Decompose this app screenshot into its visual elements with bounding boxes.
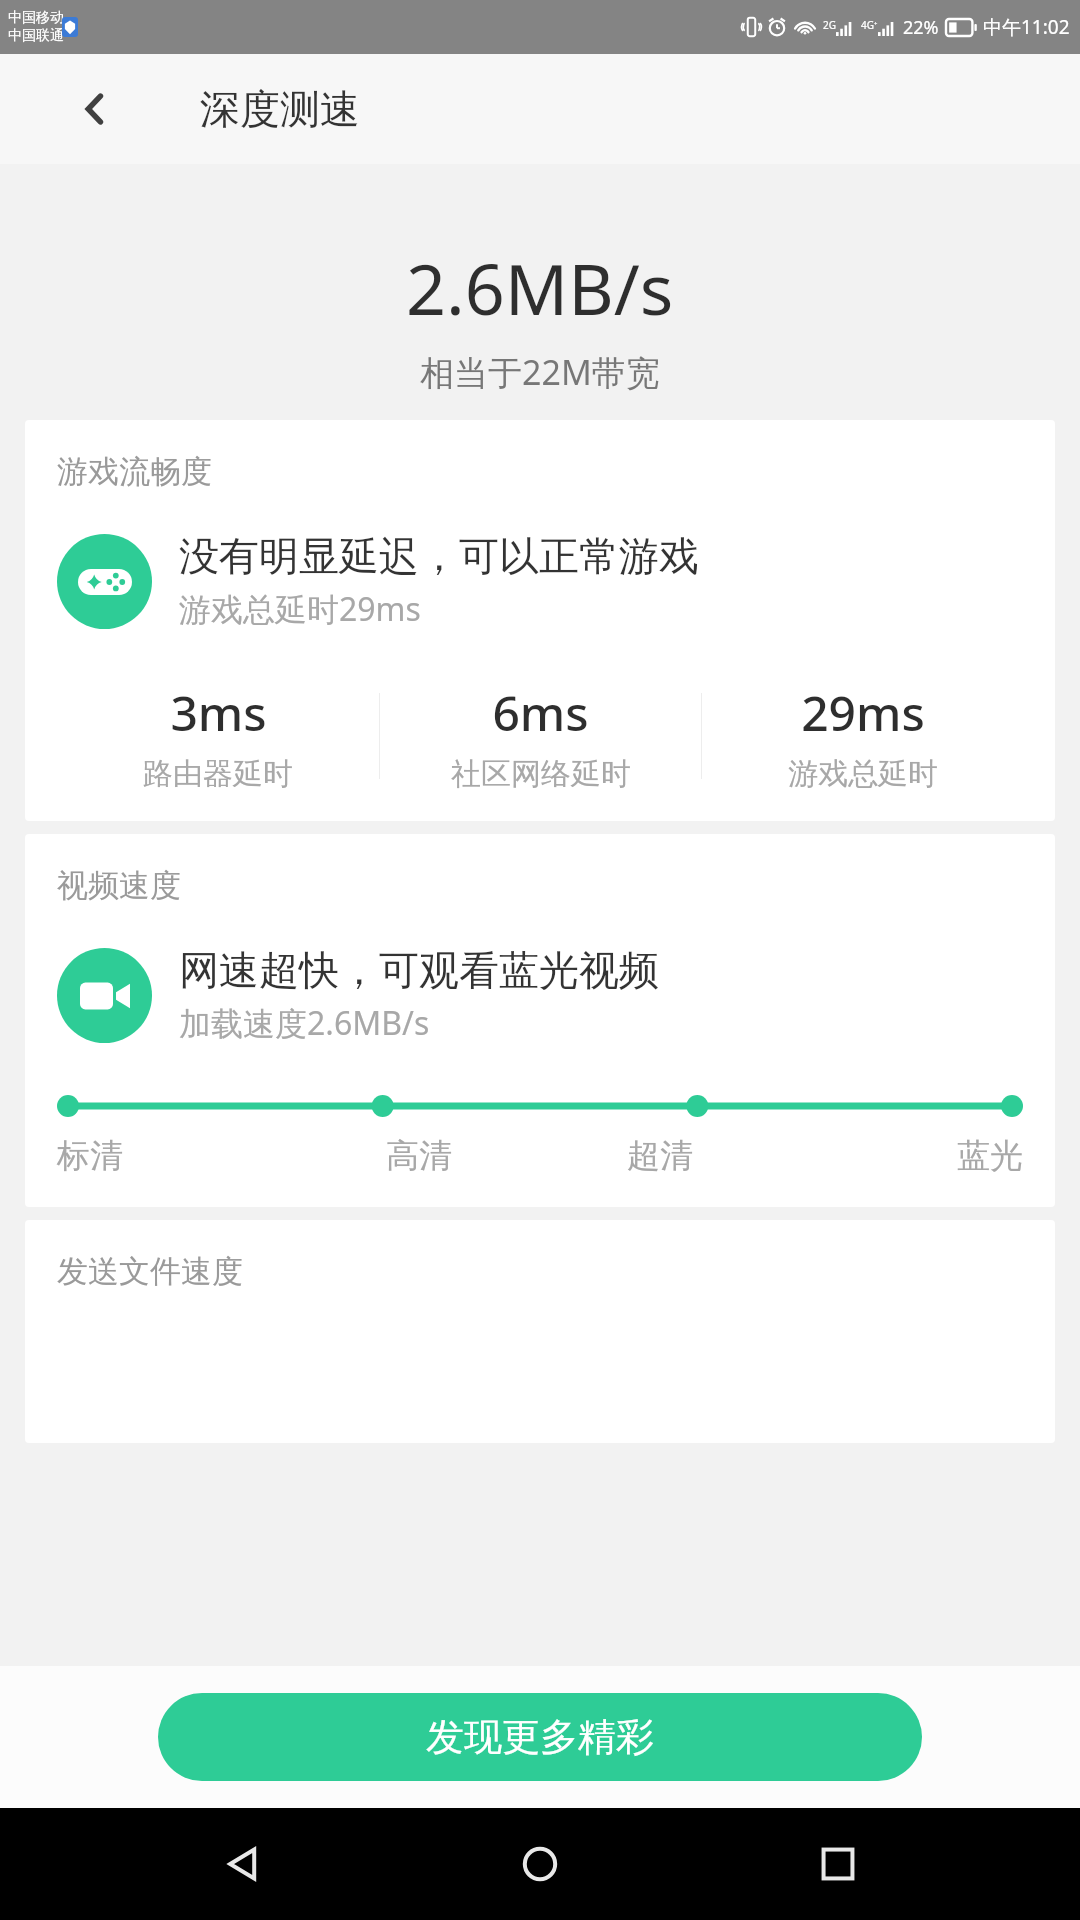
staticText: 超清 bbox=[627, 1135, 693, 1177]
button[interactable]: Back bbox=[188, 1809, 298, 1919]
staticText: 中国联通 bbox=[8, 27, 64, 45]
staticText: 29ms bbox=[801, 680, 925, 745]
staticText: 3ms bbox=[170, 680, 267, 745]
staticText: 6ms bbox=[492, 680, 589, 745]
staticText: 没有明显延迟，可以正常游戏 bbox=[179, 531, 699, 581]
staticText: 游戏总延时 bbox=[788, 755, 938, 793]
staticText: 高清 bbox=[386, 1135, 452, 1177]
staticText: 中午11:02 bbox=[983, 14, 1070, 40]
button[interactable]: 视频速度 bbox=[25, 834, 1055, 1207]
button[interactable]: Home bbox=[485, 1809, 595, 1919]
staticText: 路由器延时 bbox=[143, 755, 293, 793]
staticText: 游戏总延时29ms bbox=[179, 587, 421, 631]
staticText: 深度测速 bbox=[200, 84, 360, 134]
staticText: 社区网络延时 bbox=[451, 755, 631, 793]
staticText: 22% bbox=[903, 15, 939, 40]
staticText: 网速超快，可观看蓝光视频 bbox=[179, 945, 659, 995]
staticText: 2.6MB/s bbox=[406, 240, 674, 335]
staticText: 游戏流畅度 bbox=[57, 452, 212, 491]
button[interactable]: 发现更多精彩 bbox=[158, 1693, 922, 1781]
staticText: 4G⁺ bbox=[861, 18, 878, 32]
staticText: 蓝光 bbox=[957, 1135, 1023, 1177]
button[interactable]: 发送文件速度 bbox=[25, 1220, 1055, 1443]
staticText: 中国移动 bbox=[8, 9, 64, 27]
staticText: 标清 bbox=[57, 1135, 123, 1177]
button[interactable]: Back bbox=[60, 74, 130, 144]
staticText: 视频速度 bbox=[57, 866, 181, 905]
staticText: 发现更多精彩 bbox=[426, 1713, 654, 1761]
button[interactable]: Recent apps bbox=[783, 1809, 893, 1919]
staticText: 发送文件速度 bbox=[57, 1252, 243, 1291]
staticText: 2G bbox=[823, 18, 836, 32]
staticText: 相当于22M带宽 bbox=[420, 349, 660, 395]
staticText: 加载速度2.6MB/s bbox=[179, 1001, 430, 1045]
button[interactable]: 游戏流畅度 bbox=[25, 420, 1055, 821]
